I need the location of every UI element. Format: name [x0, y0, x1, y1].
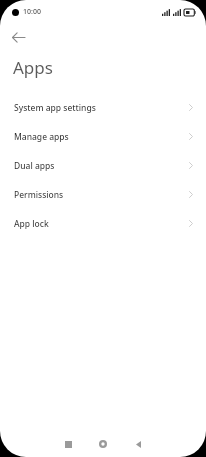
staticText: System app settings — [14, 102, 189, 114]
staticText: Apps — [13, 56, 53, 79]
staticText: App lock — [14, 218, 189, 230]
button[interactable]: Recent apps — [51, 432, 85, 456]
button[interactable]: App lock — [0, 209, 206, 238]
button[interactable]: Permissions — [0, 180, 206, 209]
staticText: Permissions — [14, 189, 189, 201]
button[interactable]: Home — [86, 432, 120, 456]
button[interactable]: Back — [6, 25, 30, 49]
button[interactable]: Back — [121, 432, 155, 456]
staticText: 10:00 — [23, 7, 41, 17]
staticText: Dual apps — [14, 160, 189, 172]
button[interactable]: Dual apps — [0, 151, 206, 180]
button[interactable]: Manage apps — [0, 122, 206, 151]
staticText: Manage apps — [14, 131, 189, 143]
button[interactable]: System app settings — [0, 93, 206, 122]
